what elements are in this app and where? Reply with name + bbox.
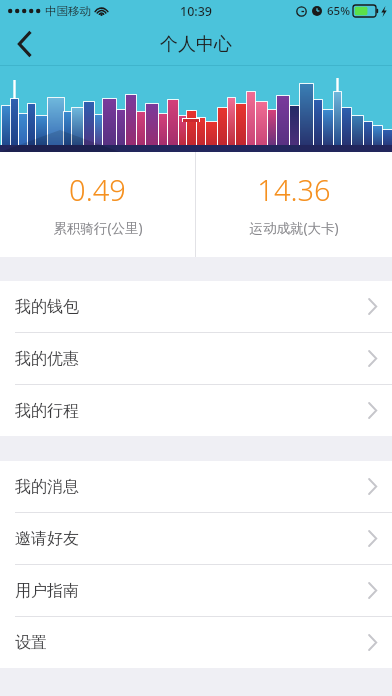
staticText: 14.36 — [257, 170, 331, 209]
staticText: 设置 — [15, 633, 47, 653]
staticText: 个人中心 — [160, 33, 232, 56]
staticText: 我的消息 — [15, 477, 79, 497]
button[interactable]: 设置 — [0, 617, 392, 668]
staticText: 10:39 — [180, 3, 213, 20]
staticText: 我的行程 — [15, 401, 79, 421]
button[interactable]: 邀请好友 — [0, 513, 392, 564]
staticText: 运动成就(大卡) — [249, 219, 339, 237]
staticText: 用户指南 — [15, 581, 79, 601]
staticText: 累积骑行(公里) — [53, 219, 143, 237]
staticText: 65% — [327, 3, 350, 19]
button[interactable]: 0.49 — [0, 152, 195, 257]
staticText: 中国移动 — [45, 4, 91, 18]
staticText: 我的钱包 — [15, 297, 79, 317]
button[interactable]: 14.36 — [196, 152, 392, 257]
button[interactable]: Back — [0, 22, 48, 66]
button[interactable]: 我的消息 — [0, 461, 392, 512]
staticText: 我的优惠 — [15, 349, 79, 369]
button[interactable]: 我的行程 — [0, 385, 392, 436]
button[interactable]: 我的优惠 — [0, 333, 392, 384]
staticText: 0.49 — [69, 170, 126, 209]
button[interactable]: 用户指南 — [0, 565, 392, 616]
staticText: 邀请好友 — [15, 529, 79, 549]
button[interactable]: 我的钱包 — [0, 281, 392, 332]
